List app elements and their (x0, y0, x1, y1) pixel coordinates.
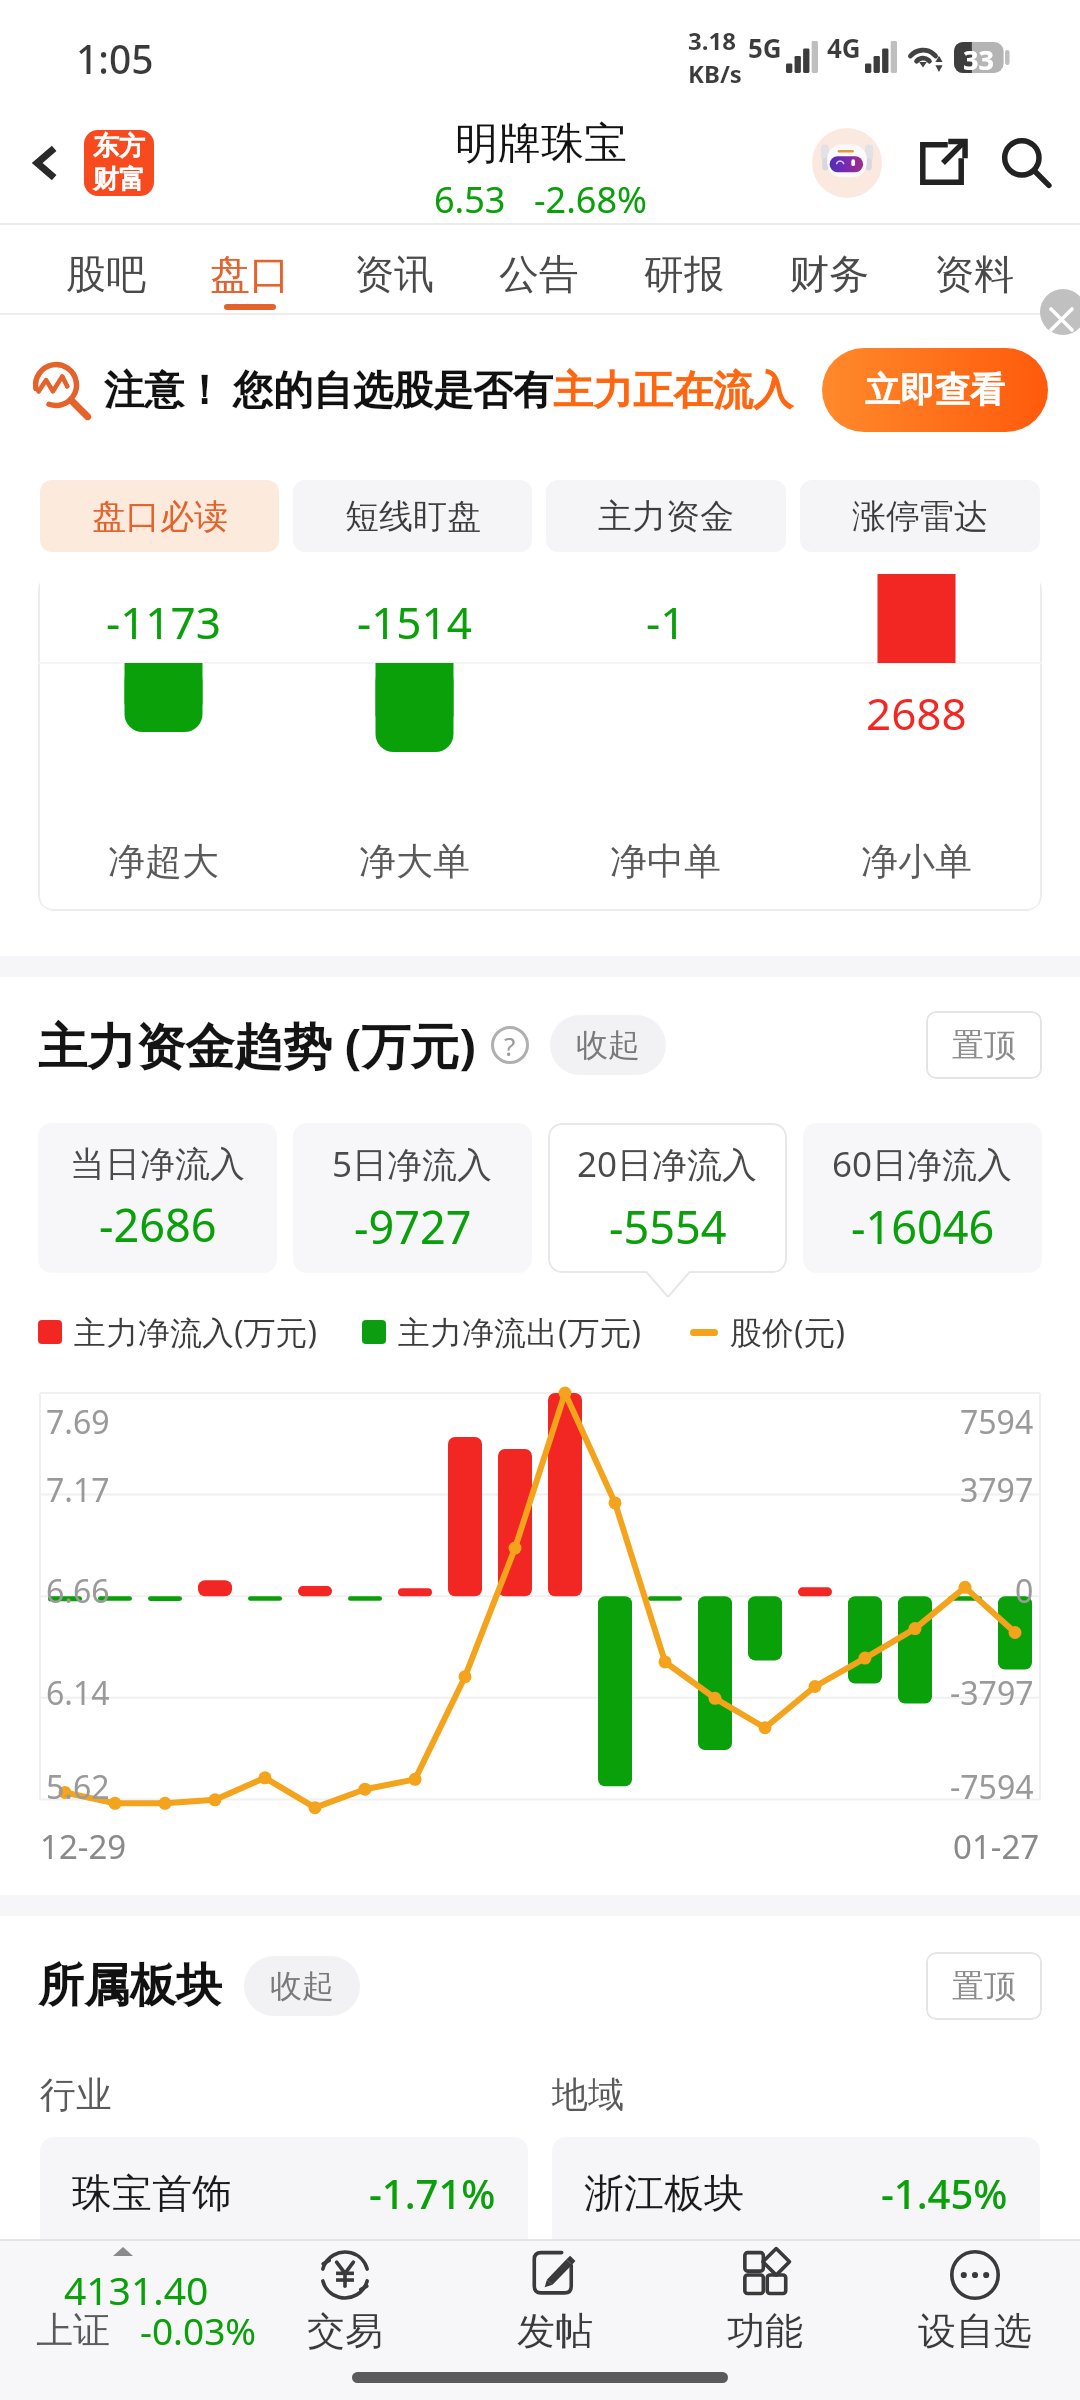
staticText: ? (504, 1028, 516, 1063)
staticText: 净中单 (610, 838, 721, 885)
staticText: 置顶 (952, 1966, 1016, 2006)
button[interactable]: Search (988, 125, 1064, 201)
staticText: 2688 (866, 683, 967, 743)
staticText: 60日净流入 (832, 1140, 1013, 1188)
staticText: 短线盯盘 (345, 495, 481, 538)
button[interactable]: 20日净流入 (548, 1123, 787, 1273)
button[interactable]: 发帖 (450, 2239, 660, 2400)
staticText: 股吧 (66, 249, 146, 299)
staticText: 发帖 (517, 2307, 593, 2355)
staticText: 置顶 (952, 1025, 1016, 1065)
staticText: 净超大 (108, 838, 219, 885)
button[interactable]: 5日净流入 (293, 1123, 532, 1273)
staticText: 5G (748, 30, 782, 65)
button[interactable]: 公告 (466, 225, 611, 315)
staticText: 7.17 (46, 1468, 110, 1512)
staticText: 股价(元) (730, 1310, 846, 1354)
staticText: -1514 (357, 592, 472, 652)
staticText: 涨停雷达 (852, 495, 988, 538)
button[interactable]: 置顶 (926, 1952, 1042, 2020)
staticText: 7.69 (46, 1400, 110, 1444)
button[interactable]: Back (8, 125, 84, 201)
staticText: 主力正在流入 (553, 365, 793, 415)
button[interactable]: 主力资金 (546, 480, 786, 552)
button[interactable]: 浙江板块 (552, 2137, 1040, 2249)
staticText: 4G (827, 30, 861, 65)
button[interactable]: 置顶 (926, 1011, 1042, 1079)
staticText: 6.66 (46, 1569, 110, 1613)
staticText: 您的自选股是否有 (233, 365, 553, 415)
button[interactable]: Share (904, 125, 980, 201)
button[interactable]: 收起 (244, 1956, 360, 2016)
staticText: 主力净流入(万元) (74, 1310, 318, 1354)
staticText: -7594 (950, 1765, 1034, 1809)
button[interactable]: East Money (84, 130, 154, 196)
staticText: 立即查看 (865, 368, 1005, 412)
staticText: 4131.40 (64, 2263, 209, 2316)
staticText: 6.53 (434, 175, 506, 224)
button[interactable]: 珠宝首饰 (40, 2137, 528, 2249)
staticText: -1.45% (881, 2166, 1008, 2220)
staticText: 公告 (499, 249, 579, 299)
button[interactable]: Close (1040, 289, 1080, 335)
button[interactable]: 收起 (550, 1015, 666, 1075)
staticText: 5日净流入 (332, 1140, 493, 1188)
staticText: 地域 (552, 2072, 624, 2117)
staticText: -1 (646, 592, 686, 652)
staticText: 设自选 (918, 2307, 1032, 2355)
staticText: -2.68% (534, 175, 647, 224)
staticText: 6.14 (46, 1671, 110, 1715)
button[interactable]: 股吧 (34, 225, 178, 315)
button[interactable]: 立即查看 (822, 348, 1048, 432)
staticText: 01-27 (953, 1824, 1040, 1869)
staticText: 收起 (576, 1025, 640, 1065)
staticText: 财务 (789, 249, 869, 299)
staticText: 资讯 (354, 249, 434, 299)
staticText: 注意！ (104, 365, 224, 415)
staticText: 3.18 (688, 24, 736, 57)
staticText: 1:05 (76, 32, 154, 85)
staticText: 净小单 (861, 838, 972, 885)
button[interactable]: 盘口必读 (40, 480, 279, 552)
staticText: 主力资金 (598, 495, 734, 538)
staticText: 交易 (307, 2307, 383, 2355)
staticText: 5.62 (46, 1765, 110, 1809)
staticText: 明牌珠宝 (455, 117, 627, 171)
staticText: 功能 (727, 2307, 803, 2355)
button[interactable]: 4131.40 (0, 2239, 240, 2400)
staticText: 盘口 (210, 249, 290, 299)
button[interactable]: 当日净流入 (38, 1123, 277, 1273)
staticText: 上证 (36, 2307, 110, 2354)
staticText: 33 (963, 41, 994, 72)
staticText: 行业 (40, 2072, 112, 2117)
button[interactable]: 财务 (756, 225, 901, 315)
staticText: 资料 (934, 249, 1014, 299)
button[interactable]: 涨停雷达 (800, 480, 1040, 552)
staticText: 主力资金趋势 (万元) (38, 1012, 476, 1079)
button[interactable]: 资料 (901, 225, 1046, 315)
staticText: 浙江板块 (584, 2168, 744, 2218)
staticText: 收起 (270, 1966, 334, 2006)
staticText: -3797 (950, 1671, 1034, 1715)
button[interactable]: 60日净流入 (803, 1123, 1042, 1273)
staticText: 珠宝首饰 (72, 2168, 232, 2218)
staticText: -16046 (851, 1196, 995, 1257)
button[interactable]: 交易 (240, 2239, 450, 2400)
button[interactable]: AI assistant (812, 128, 882, 198)
staticText: -1173 (106, 592, 221, 652)
button[interactable]: 设自选 (870, 2239, 1080, 2400)
button[interactable]: 研报 (611, 225, 756, 315)
button[interactable]: 功能 (660, 2239, 870, 2400)
staticText: 东方 (93, 130, 145, 163)
button[interactable]: Help (488, 1023, 532, 1067)
staticText: -2686 (99, 1194, 217, 1255)
staticText: -0.03% (140, 2305, 257, 2355)
staticText: 财富 (93, 163, 145, 196)
staticText: -1.71% (369, 2166, 496, 2220)
staticText: -9727 (354, 1196, 472, 1257)
staticText: 主力净流出(万元) (398, 1310, 642, 1354)
button[interactable]: 盘口 (178, 225, 322, 315)
button[interactable]: 资讯 (322, 225, 466, 315)
button[interactable]: 短线盯盘 (293, 480, 532, 552)
staticText: 0 (1015, 1569, 1034, 1613)
